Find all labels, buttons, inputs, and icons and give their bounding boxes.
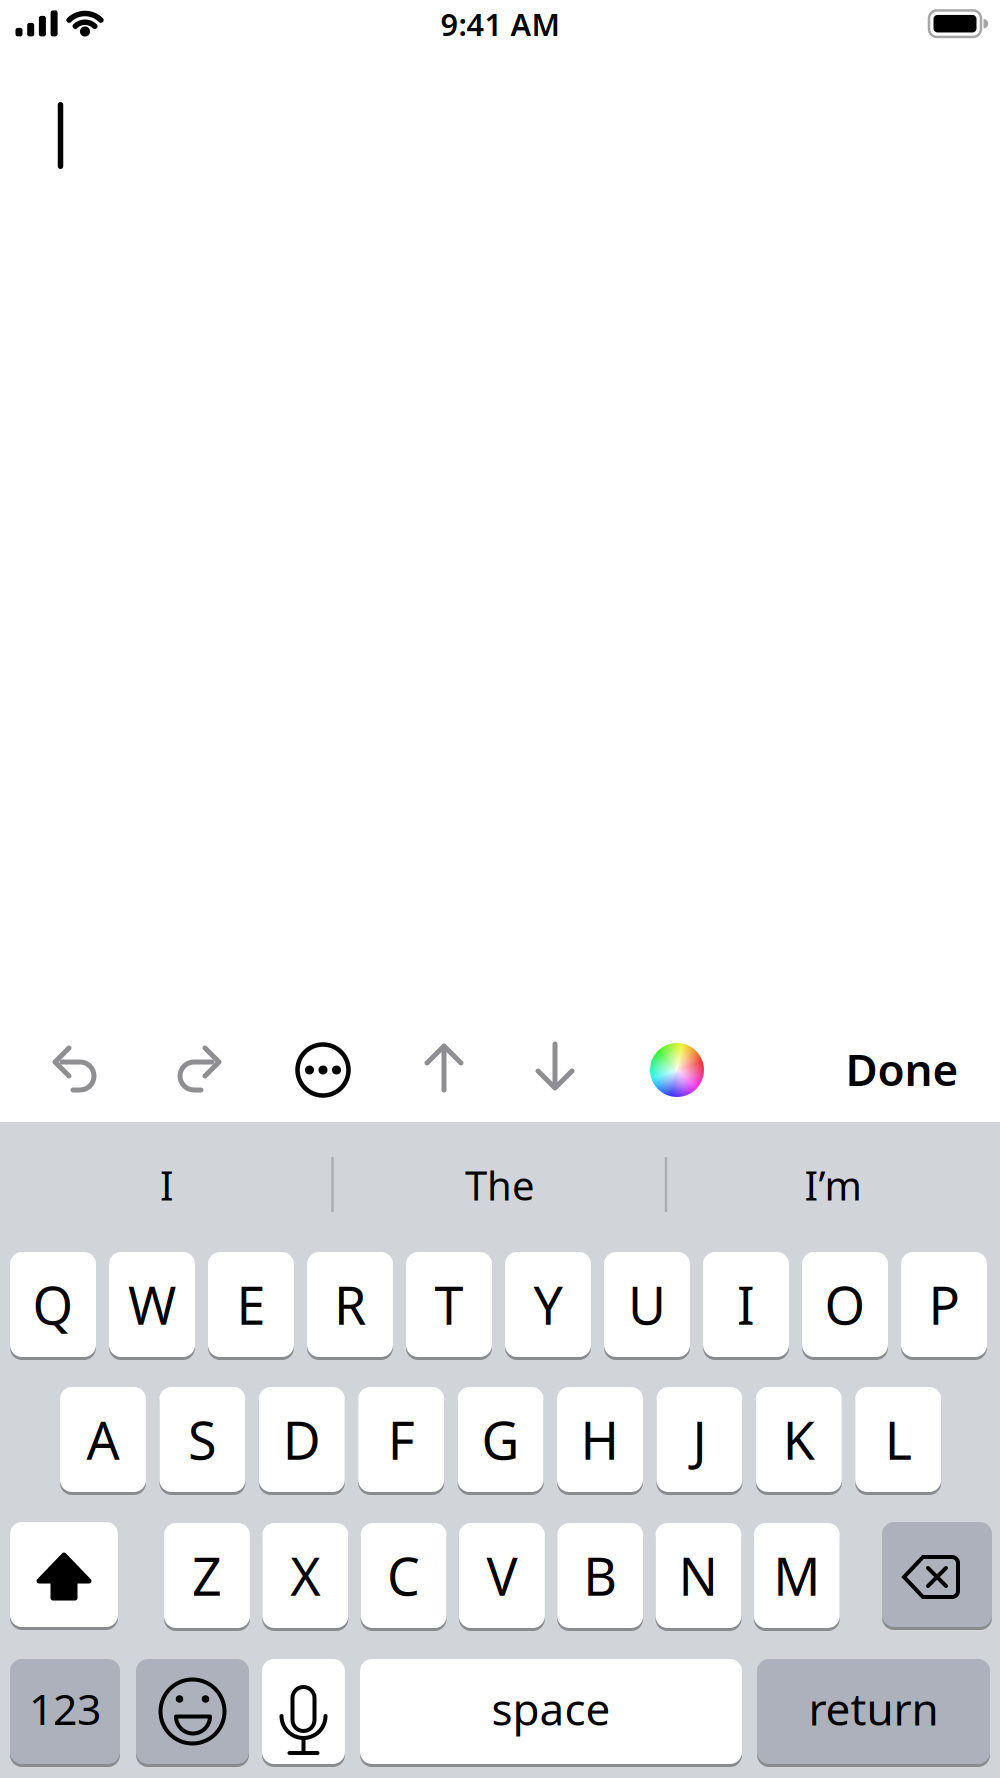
- button[interactable]: I’m: [0, 0, 1000, 1778]
- staticText: J: [692, 1405, 706, 1474]
- button[interactable]: 123: [0, 0, 1000, 1778]
- button[interactable]: Previous field: [0, 0, 1000, 1778]
- button[interactable]: M: [0, 0, 1000, 1778]
- button[interactable]: Next field: [0, 0, 1000, 1778]
- button[interactable]: D: [0, 0, 1000, 1778]
- staticText: H: [580, 1405, 619, 1474]
- button[interactable]: P: [0, 0, 1000, 1778]
- button[interactable]: Done: [0, 0, 1000, 1778]
- staticText: K: [783, 1405, 815, 1474]
- button[interactable]: I: [0, 0, 1000, 1778]
- button[interactable]: The: [0, 0, 1000, 1778]
- button[interactable]: Q: [0, 0, 1000, 1778]
- button[interactable]: G: [0, 0, 1000, 1778]
- button[interactable]: Y: [0, 0, 1000, 1778]
- button[interactable]: Text colour: [0, 0, 1000, 1778]
- staticText: N: [678, 1541, 718, 1610]
- button[interactable]: R: [0, 0, 1000, 1778]
- button[interactable]: L: [0, 0, 1000, 1778]
- staticText: 9:41 AM: [440, 4, 559, 44]
- staticText: X: [290, 1541, 320, 1610]
- staticText: 123: [29, 1680, 101, 1737]
- button[interactable]: Dictate: [0, 0, 1000, 1778]
- button[interactable]: N: [0, 0, 1000, 1778]
- button[interactable]: A: [0, 0, 1000, 1778]
- staticText: Y: [533, 1270, 562, 1339]
- staticText: A: [86, 1405, 119, 1474]
- button[interactable]: W: [0, 0, 1000, 1778]
- staticText: I: [737, 1270, 755, 1339]
- staticText: G: [482, 1405, 520, 1474]
- button[interactable]: O: [0, 0, 1000, 1778]
- staticText: return: [808, 1679, 938, 1738]
- button[interactable]: U: [0, 0, 1000, 1778]
- staticText: I: [160, 1158, 174, 1211]
- button[interactable]: Undo: [0, 0, 1000, 1778]
- staticText: U: [628, 1270, 666, 1339]
- button[interactable]: H: [0, 0, 1000, 1778]
- button[interactable]: More: [0, 0, 1000, 1778]
- staticText: R: [334, 1270, 366, 1339]
- button[interactable]: X: [0, 0, 1000, 1778]
- staticText: P: [928, 1270, 959, 1339]
- staticText: C: [387, 1541, 420, 1610]
- button[interactable]: Delete: [0, 0, 1000, 1778]
- staticText: E: [236, 1270, 265, 1339]
- button[interactable]: C: [0, 0, 1000, 1778]
- button[interactable]: Shift: [0, 0, 1000, 1778]
- staticText: M: [773, 1541, 820, 1610]
- button[interactable]: V: [0, 0, 1000, 1778]
- staticText: O: [824, 1270, 865, 1339]
- staticText: Q: [32, 1270, 73, 1339]
- staticText: F: [388, 1405, 415, 1474]
- staticText: W: [128, 1270, 176, 1339]
- button[interactable]: I: [0, 0, 1000, 1778]
- staticText: D: [283, 1405, 321, 1474]
- button[interactable]: space: [0, 0, 1000, 1778]
- staticText: V: [486, 1541, 517, 1610]
- button[interactable]: return: [0, 0, 1000, 1778]
- button[interactable]: Emoji: [0, 0, 1000, 1778]
- button[interactable]: Z: [0, 0, 1000, 1778]
- button[interactable]: K: [0, 0, 1000, 1778]
- button[interactable]: F: [0, 0, 1000, 1778]
- staticText: Z: [192, 1541, 222, 1610]
- button[interactable]: E: [0, 0, 1000, 1778]
- button[interactable]: Redo: [0, 0, 1000, 1778]
- button[interactable]: J: [0, 0, 1000, 1778]
- staticText: The: [465, 1158, 535, 1211]
- staticText: Done: [845, 1040, 958, 1098]
- staticText: T: [434, 1270, 463, 1339]
- button[interactable]: B: [0, 0, 1000, 1778]
- staticText: B: [583, 1541, 617, 1610]
- button[interactable]: T: [0, 0, 1000, 1778]
- staticText: I’m: [804, 1158, 861, 1211]
- button[interactable]: S: [0, 0, 1000, 1778]
- staticText: L: [885, 1405, 912, 1474]
- staticText: S: [188, 1405, 217, 1474]
- staticText: space: [491, 1679, 610, 1738]
